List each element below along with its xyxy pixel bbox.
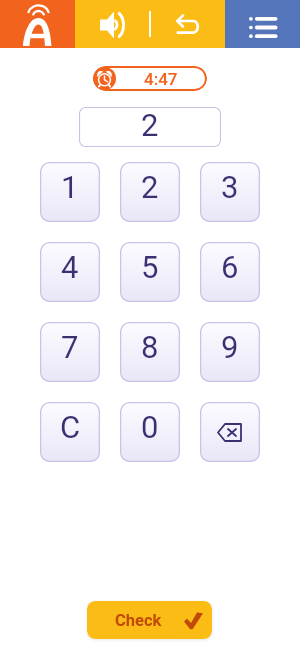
staticText: 2 [141,107,159,143]
button[interactable]: Undo [150,0,225,48]
button[interactable]: 4 [40,242,100,302]
staticText: 4 [61,249,79,285]
button[interactable]: 0 [120,402,180,462]
staticText: 5 [141,249,159,285]
button[interactable]: List [225,0,300,48]
staticText: 2 [141,169,159,205]
button[interactable]: 7 [40,322,100,382]
button[interactable]: Check [87,601,212,639]
button[interactable]: Pronounce [0,0,75,48]
button[interactable]: 9 [200,322,260,382]
button[interactable]: 3 [200,162,260,222]
button[interactable]: 2 [120,162,180,222]
staticText: C [60,409,81,445]
button[interactable]: 6 [200,242,260,302]
staticText: Check [115,611,162,630]
staticText: 9 [221,329,239,365]
button[interactable]: 5 [120,242,180,302]
staticText: 6 [221,249,239,285]
button[interactable] [200,402,260,462]
button[interactable]: 4:47 [93,66,207,91]
button[interactable]: 2 [79,107,221,147]
button[interactable]: 1 [40,162,100,222]
staticText: 1 [61,169,79,205]
staticText: 0 [141,409,159,445]
staticText: 4:47 [144,69,178,89]
staticText: 8 [141,329,159,365]
staticText: 3 [221,169,239,205]
button[interactable]: Sound [75,0,150,48]
button[interactable]: 8 [120,322,180,382]
staticText: 7 [61,329,79,365]
button[interactable]: C [40,402,100,462]
